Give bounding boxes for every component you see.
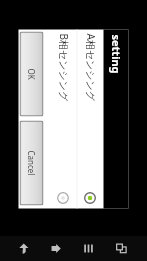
button[interactable]: OK bbox=[20, 32, 42, 115]
button[interactable]: Menu bbox=[72, 236, 105, 261]
staticText: A相センシング bbox=[83, 33, 97, 101]
staticText: B相センシング bbox=[56, 33, 70, 101]
staticText: OK bbox=[25, 68, 36, 80]
button[interactable]: Cancel bbox=[20, 121, 42, 204]
button[interactable]: Home bbox=[39, 236, 72, 261]
staticText: setting bbox=[108, 34, 123, 74]
button[interactable]: Back bbox=[7, 236, 39, 261]
button[interactable]: B相センシング bbox=[50, 29, 76, 208]
button[interactable]: Recent apps bbox=[105, 236, 138, 261]
staticText: Cancel bbox=[25, 150, 36, 175]
button[interactable]: A相センシング bbox=[77, 29, 103, 208]
